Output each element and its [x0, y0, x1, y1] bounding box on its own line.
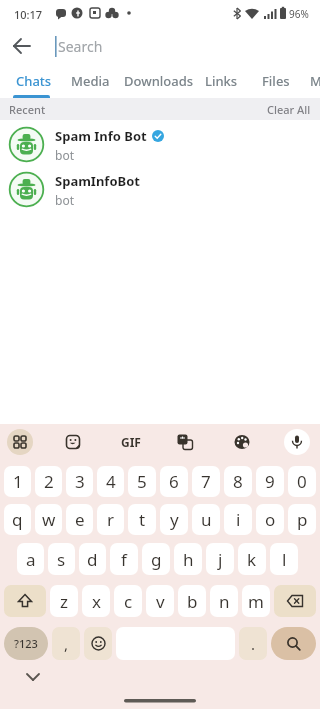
button[interactable]: l [270, 543, 298, 575]
staticText: 6 [169, 470, 179, 493]
button[interactable]: r [97, 504, 124, 535]
staticText: v [156, 590, 165, 613]
staticText: . [251, 634, 256, 654]
button[interactable]: p [288, 504, 316, 535]
button[interactable]: b [178, 585, 206, 617]
staticText: 9 [265, 470, 275, 493]
button[interactable]: h [174, 543, 202, 575]
button[interactable]: y [160, 504, 188, 535]
button[interactable]: z [50, 585, 78, 617]
staticText: u [201, 508, 212, 531]
staticText: 0 [297, 470, 307, 493]
button[interactable]: 9 [256, 466, 284, 497]
button[interactable]: t [128, 504, 156, 535]
staticText: 5 [137, 470, 147, 493]
staticText: b [187, 590, 198, 613]
staticText: Recent [9, 102, 46, 117]
staticText: d [87, 548, 98, 571]
button[interactable]: e [66, 504, 93, 535]
button[interactable]: f [110, 543, 138, 575]
staticText: m [248, 590, 264, 613]
button[interactable] [271, 627, 316, 660]
staticText: 8 [233, 470, 243, 493]
button[interactable] [7, 429, 33, 455]
staticText: k [247, 548, 257, 571]
button[interactable]: SpamInfoBot [0, 167, 320, 212]
button[interactable] [284, 429, 310, 455]
button[interactable]: 6 [160, 466, 188, 497]
button[interactable]: 4 [97, 466, 124, 497]
button[interactable] [8, 32, 36, 60]
button[interactable]: d [79, 543, 106, 575]
staticText: x [92, 590, 101, 613]
button[interactable]: Downloads [124, 72, 194, 90]
button[interactable]: s [48, 543, 75, 575]
staticText: g [151, 548, 162, 571]
button[interactable]: c [114, 585, 142, 617]
button[interactable]: 3 [66, 466, 93, 497]
button[interactable]: ?123 [4, 627, 48, 660]
button[interactable]: Files [262, 72, 290, 90]
staticText: q [12, 508, 23, 531]
button[interactable] [84, 627, 112, 660]
staticText: Spam Info Bot [55, 127, 147, 145]
button[interactable]: m [242, 585, 270, 617]
button[interactable]: Clear All [267, 102, 311, 117]
staticText: GIF [121, 434, 141, 450]
staticText: 1 [13, 470, 23, 493]
button[interactable]: v [146, 585, 174, 617]
button[interactable]: 5 [128, 466, 156, 497]
staticText: t [139, 508, 146, 531]
button[interactable] [229, 429, 255, 455]
button[interactable]: Media [71, 72, 110, 90]
button[interactable]: Spam Info Bot [0, 122, 320, 167]
button[interactable]: Mu [310, 72, 320, 90]
staticText: , [64, 634, 69, 654]
button[interactable]: w [35, 504, 62, 535]
button[interactable]: j [206, 543, 234, 575]
button[interactable]: 2 [35, 466, 62, 497]
button[interactable] [4, 585, 46, 617]
staticText: z [60, 590, 68, 613]
button[interactable] [274, 585, 316, 617]
staticText: o [265, 508, 276, 531]
button[interactable]: , [52, 627, 80, 660]
button[interactable]: u [192, 504, 220, 535]
button[interactable]: Links [205, 72, 238, 90]
staticText: ?123 [14, 636, 38, 651]
staticText: j [218, 548, 223, 571]
button[interactable]: 7 [192, 466, 220, 497]
staticText: n [219, 590, 230, 613]
button[interactable]: k [238, 543, 266, 575]
staticText: w [42, 508, 56, 531]
staticText: p [297, 508, 308, 531]
staticText: s [57, 548, 66, 571]
button[interactable]: . [239, 627, 267, 660]
button[interactable] [172, 429, 198, 455]
button[interactable]: 0 [288, 466, 316, 497]
staticText: Chats [16, 72, 52, 90]
staticText: bot [55, 147, 74, 163]
staticText: 3 [75, 470, 85, 493]
staticText: c [124, 590, 133, 613]
staticText: l [282, 548, 287, 571]
button[interactable]: q [4, 504, 31, 535]
button[interactable]: a [17, 543, 44, 575]
staticText: f [121, 548, 127, 571]
staticText: e [75, 508, 85, 531]
button[interactable]: i [224, 504, 252, 535]
button[interactable]: n [210, 585, 238, 617]
staticText: 4 [106, 470, 116, 493]
button[interactable]: x [82, 585, 110, 617]
staticText: Search [58, 37, 103, 56]
button[interactable]: g [142, 543, 170, 575]
button[interactable]: 8 [224, 466, 252, 497]
button[interactable]: o [256, 504, 284, 535]
button[interactable] [60, 429, 86, 455]
button[interactable]: GIF [116, 429, 146, 455]
button[interactable]: 1 [4, 466, 31, 497]
staticText: y [170, 508, 179, 531]
button[interactable]: Chats [10, 64, 58, 98]
staticText: 96% [289, 7, 309, 21]
